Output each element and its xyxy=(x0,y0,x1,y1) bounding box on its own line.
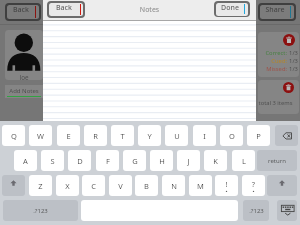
staticText: M xyxy=(197,181,204,191)
button[interactable]: F xyxy=(96,150,119,171)
staticText: L xyxy=(242,156,246,166)
staticText: Q xyxy=(11,131,17,141)
staticText: C xyxy=(91,181,96,191)
staticText: Notes xyxy=(43,5,256,15)
staticText: Missed: xyxy=(258,65,287,73)
button[interactable]: M xyxy=(189,175,212,196)
button[interactable]: Hide keyboard xyxy=(277,200,297,221)
staticText: Correct: xyxy=(258,49,287,57)
button[interactable]: .?123 xyxy=(243,200,269,221)
staticText: X xyxy=(65,181,70,191)
button[interactable]: O xyxy=(220,125,243,146)
button[interactable]: W xyxy=(29,125,52,146)
staticText: F xyxy=(106,156,110,166)
button[interactable]: E xyxy=(57,125,80,146)
staticText: Back xyxy=(7,5,37,15)
button[interactable]: Shift xyxy=(2,175,25,196)
button[interactable]: Delete xyxy=(258,32,299,77)
staticText: Y xyxy=(147,131,152,141)
button[interactable]: V xyxy=(109,175,132,196)
button[interactable]: Y xyxy=(138,125,161,146)
staticText: U xyxy=(174,131,180,141)
staticText: B xyxy=(144,181,149,191)
button[interactable]: Delete xyxy=(283,82,294,93)
button[interactable]: Backspace xyxy=(275,125,298,146)
staticText: N xyxy=(171,181,177,191)
button[interactable]: Back xyxy=(47,1,85,18)
staticText: 1/3 xyxy=(289,57,298,65)
staticText: K xyxy=(213,156,218,166)
button[interactable]: L xyxy=(232,150,255,171)
button[interactable]: N xyxy=(162,175,185,196)
button[interactable]: D xyxy=(68,150,91,171)
staticText: W xyxy=(37,131,44,141)
button[interactable]: Q xyxy=(2,125,25,146)
button[interactable]: C xyxy=(82,175,105,196)
staticText: 1/3 xyxy=(289,65,298,73)
staticText: H xyxy=(159,156,165,166)
staticText: T xyxy=(120,131,125,141)
staticText: J xyxy=(187,156,190,166)
button[interactable]: J xyxy=(177,150,200,171)
button[interactable]: return xyxy=(257,150,297,171)
button[interactable]: T xyxy=(111,125,134,146)
staticText: R xyxy=(93,131,98,141)
staticText: D xyxy=(77,156,83,166)
button[interactable]: U xyxy=(165,125,188,146)
button[interactable]: .?123 xyxy=(3,200,78,221)
staticText: total 3 items xyxy=(258,99,296,107)
staticText: V xyxy=(118,181,123,191)
button[interactable]: Delete xyxy=(258,80,299,114)
staticText: E xyxy=(66,131,71,141)
button[interactable]: Delete xyxy=(283,34,295,46)
staticText: ! xyxy=(215,179,238,189)
staticText: S xyxy=(50,156,55,166)
button[interactable]: B xyxy=(135,175,158,196)
button[interactable]: ! xyxy=(215,175,238,196)
staticText: Add Notes xyxy=(5,87,43,95)
staticText: return xyxy=(268,157,286,165)
staticText: .?123 xyxy=(249,207,264,215)
staticText: Done xyxy=(216,3,246,13)
staticText: P xyxy=(256,131,261,141)
staticText: Joe xyxy=(5,73,43,80)
button[interactable]: G xyxy=(123,150,146,171)
button[interactable]: I xyxy=(193,125,216,146)
button[interactable]: ? xyxy=(242,175,265,196)
button[interactable]: P xyxy=(247,125,270,146)
button[interactable]: Z xyxy=(29,175,52,196)
button[interactable]: Shift xyxy=(267,175,297,196)
staticText: ? xyxy=(242,179,265,189)
staticText: Share xyxy=(260,5,292,15)
staticText: Back xyxy=(49,3,81,13)
button[interactable]: Done xyxy=(214,1,250,17)
staticText: 1/3 xyxy=(289,49,298,57)
staticText: G xyxy=(132,156,138,166)
button[interactable]: Joe xyxy=(5,30,43,80)
staticText: Z xyxy=(38,181,43,191)
staticText: A xyxy=(23,156,28,166)
staticText: Cued: xyxy=(258,57,287,65)
button[interactable]: A xyxy=(14,150,37,171)
staticText: O xyxy=(229,131,235,141)
button[interactable]: H xyxy=(150,150,173,171)
button[interactable]: X xyxy=(56,175,79,196)
staticText: I xyxy=(203,131,206,141)
button[interactable]: Add Notes xyxy=(5,85,43,98)
button[interactable]: R xyxy=(84,125,107,146)
button[interactable]: Share xyxy=(258,3,296,21)
button[interactable]: S xyxy=(41,150,64,171)
staticText: .?123 xyxy=(33,207,48,215)
button[interactable]: K xyxy=(204,150,227,171)
button[interactable]: Back xyxy=(5,3,41,21)
